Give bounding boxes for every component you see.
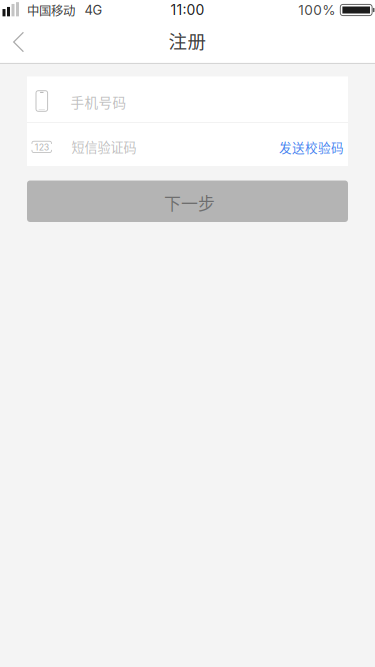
staticText: 手机号码 (71, 92, 127, 112)
staticText: 123 (35, 142, 49, 153)
staticText: 4G (84, 2, 102, 18)
staticText: 短信验证码 (71, 137, 136, 156)
button[interactable]: 下一步 (27, 180, 348, 222)
staticText: 11:00 (170, 1, 204, 18)
staticText: 下一步 (164, 190, 215, 215)
staticText: 注册 (168, 27, 206, 54)
staticText: 发送校验码 (279, 138, 344, 156)
button[interactable]: Back (0, 20, 44, 64)
staticText: 中国移动 (27, 1, 75, 19)
staticText: 100% (298, 2, 335, 18)
button[interactable]: 发送校验码 (279, 133, 348, 156)
